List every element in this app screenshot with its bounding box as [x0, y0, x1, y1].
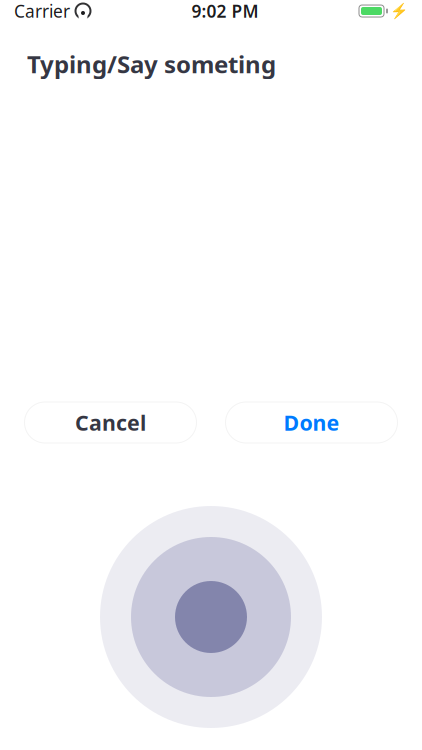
staticText: Carrier: [14, 0, 70, 22]
staticText: Typing/Say someting: [27, 48, 276, 80]
button[interactable]: Cancel: [24, 402, 196, 443]
staticText: 9:02 PM: [191, 0, 258, 22]
staticText: ⚡: [390, 3, 408, 19]
button[interactable]: Done: [225, 402, 397, 443]
staticText: Done: [283, 408, 339, 437]
staticText: Cancel: [75, 408, 146, 437]
